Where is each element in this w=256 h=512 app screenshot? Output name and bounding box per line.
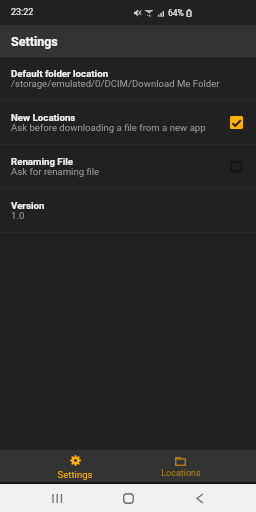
button[interactable]: Version <box>0 189 256 233</box>
button[interactable]: Unchecked <box>227 157 245 175</box>
staticText: Settings <box>57 469 93 480</box>
button[interactable]: Checked <box>227 113 245 131</box>
staticText: New Locations <box>11 112 76 123</box>
staticText: Ask before downloading a file from a new… <box>11 122 206 133</box>
staticText: 64% <box>168 8 184 18</box>
button[interactable]: Locations <box>128 450 234 482</box>
staticText: Renaming File <box>11 156 74 167</box>
staticText: Version <box>11 200 45 211</box>
button[interactable]: Home <box>113 484 143 512</box>
button[interactable]: Renaming File <box>0 145 256 189</box>
staticText: Ask for renaming file <box>11 166 100 177</box>
button[interactable]: Recents <box>42 484 72 512</box>
staticText: Locations <box>161 468 201 479</box>
button[interactable]: Default folder location <box>0 58 256 101</box>
staticText: 23:22 <box>11 7 34 18</box>
staticText: 1.0 <box>11 210 25 221</box>
button[interactable]: Settings <box>22 450 128 482</box>
staticText: /storage/emulated/0/DCIM/Download Me Fol… <box>11 78 220 89</box>
button[interactable]: New Locations <box>0 101 256 145</box>
staticText: Settings <box>11 34 58 49</box>
button[interactable]: Back <box>185 484 215 512</box>
staticText: Default folder location <box>11 68 109 79</box>
